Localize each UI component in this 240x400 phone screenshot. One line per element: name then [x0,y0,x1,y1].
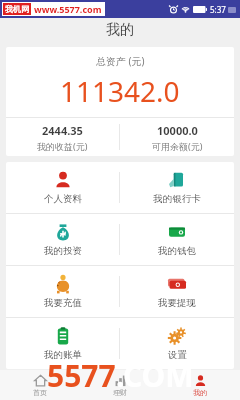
button[interactable]: 我的账单 [6,318,119,369]
staticText: www.5577.com [34,3,102,15]
staticText: 5:37 [210,4,226,15]
button[interactable]: 设置 [120,318,234,369]
button[interactable]: 我的投资 [6,214,119,265]
staticText: 我机网 [5,4,29,14]
button[interactable]: 我的 [160,370,240,400]
staticText: 2444.35 [42,123,83,138]
staticText: 总资产 (元) [96,54,145,68]
staticText: 我的账单 [44,349,82,361]
staticText: 我的银行卡 [153,193,201,205]
staticText: 我的收益(元) [37,140,88,152]
button[interactable]: 10000.0 [120,118,234,156]
staticText: 理财 [113,388,127,397]
staticText: 我的投资 [44,245,82,257]
button[interactable]: 2444.35 [6,118,119,156]
staticText: 我的 [193,388,207,397]
staticText: 我要充值 [44,297,82,309]
button[interactable]: 我要提现 [120,266,234,317]
staticText: 设置 [168,349,187,361]
staticText: 111342.0 [60,72,180,110]
staticText: 10000.0 [157,123,198,138]
staticText: 我的 [106,21,134,39]
staticText: 首页 [33,388,47,397]
button[interactable]: 我要充值 [6,266,119,317]
staticText: .COM [116,355,194,396]
button[interactable]: 个人资料 [6,162,119,213]
staticText: 个人资料 [44,193,82,205]
staticText: 可用余额(元) [152,140,203,152]
button[interactable]: 我的钱包 [120,214,234,265]
staticText: 我的钱包 [158,245,196,257]
button[interactable]: 我的银行卡 [120,162,234,213]
staticText: 5577 [47,355,116,396]
button[interactable]: 首页 [0,370,80,400]
staticText: 我要提现 [158,297,196,309]
button[interactable]: 理财 [80,370,160,400]
